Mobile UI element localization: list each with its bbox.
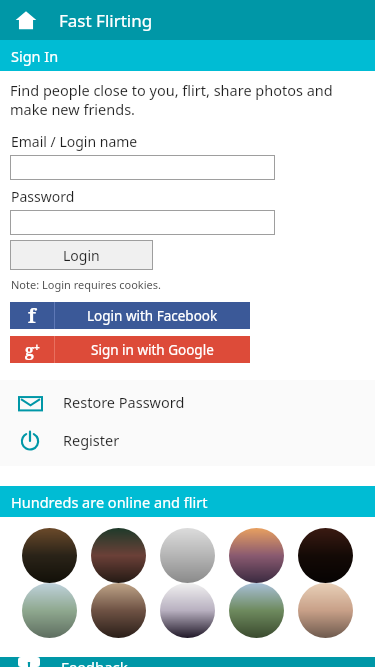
button[interactable]: Profile photo: [22, 528, 77, 583]
button[interactable]: Hundreds are online and flirt: [0, 486, 375, 517]
button[interactable]: !: [0, 657, 375, 667]
staticText: g: [25, 339, 34, 361]
staticText: +: [34, 340, 40, 354]
button[interactable]: Home: [14, 8, 38, 32]
staticText: f: [28, 303, 36, 329]
button[interactable]: [10, 210, 275, 235]
button[interactable]: Profile photo: [160, 583, 215, 638]
button[interactable]: Profile photo: [91, 583, 146, 638]
button[interactable]: Login: [10, 240, 153, 270]
button[interactable]: Profile photo: [160, 528, 215, 583]
staticText: Find people close to you, flirt, share p…: [10, 80, 333, 119]
staticText: Password: [11, 187, 75, 206]
staticText: Login: [63, 246, 100, 265]
staticText: Feedback: [61, 657, 128, 667]
button[interactable]: Profile photo: [229, 583, 284, 638]
staticText: Fast Flirting: [59, 9, 153, 32]
button[interactable]: Profile photo: [91, 528, 146, 583]
button[interactable]: Sign In: [0, 40, 375, 71]
staticText: !: [27, 657, 31, 667]
button[interactable]: f: [10, 302, 250, 329]
button[interactable]: g: [10, 336, 250, 363]
button[interactable]: Profile photo: [22, 583, 77, 638]
staticText: Note: Login requires cookies.: [11, 277, 161, 292]
staticText: Restore Password: [63, 392, 185, 412]
button[interactable]: Profile photo: [298, 583, 353, 638]
button[interactable]: Profile photo: [229, 528, 284, 583]
button[interactable]: Profile photo: [298, 528, 353, 583]
staticText: Sign in with Google: [91, 341, 214, 359]
staticText: Hundreds are online and flirt: [11, 492, 208, 512]
staticText: Sign In: [11, 46, 59, 66]
button[interactable]: [10, 155, 275, 180]
button[interactable]: Restore Password: [0, 390, 375, 414]
button[interactable]: Register: [0, 428, 375, 452]
staticText: Register: [63, 430, 120, 450]
staticText: Login with Facebook: [87, 307, 218, 325]
staticText: Email / Login name: [11, 132, 138, 151]
